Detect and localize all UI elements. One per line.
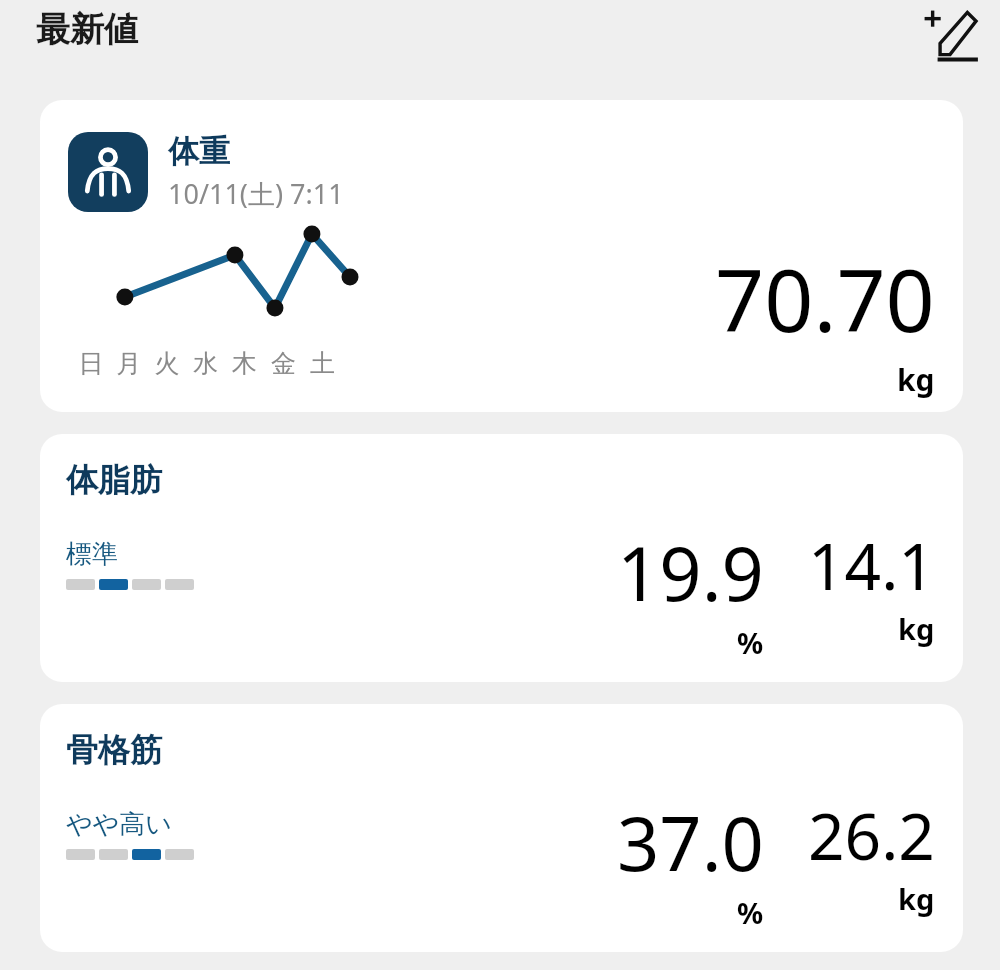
- staticText: %: [737, 623, 764, 662]
- button[interactable]: 骨格筋: [40, 704, 963, 952]
- staticText: 水: [186, 348, 225, 379]
- staticText: 37.0: [617, 792, 764, 893]
- button[interactable]: 体脂肪: [40, 434, 963, 682]
- staticText: kg: [898, 609, 935, 648]
- staticText: 火: [148, 348, 186, 379]
- staticText: 日: [72, 348, 110, 379]
- staticText: 19.9: [617, 522, 764, 623]
- staticText: 最新値: [36, 8, 138, 51]
- staticText: 木: [225, 348, 264, 379]
- staticText: 標準: [66, 538, 118, 571]
- staticText: %: [737, 893, 764, 932]
- button[interactable]: 体重: [40, 100, 963, 412]
- staticText: やや高い: [66, 808, 172, 841]
- staticText: 骨格筋: [66, 730, 162, 770]
- staticText: 26.2: [808, 792, 935, 879]
- staticText: 体重: [168, 132, 230, 171]
- staticText: 体脂肪: [66, 460, 162, 500]
- staticText: kg: [897, 359, 935, 400]
- button[interactable]: Add record: [914, 0, 986, 72]
- staticText: kg: [898, 879, 935, 918]
- staticText: 14.1: [808, 522, 935, 609]
- staticText: 土: [303, 348, 342, 379]
- staticText: 70.70: [715, 240, 935, 357]
- staticText: 10/11(土) 7:11: [168, 175, 344, 212]
- staticText: 月: [110, 348, 148, 379]
- staticText: 金: [264, 348, 303, 379]
